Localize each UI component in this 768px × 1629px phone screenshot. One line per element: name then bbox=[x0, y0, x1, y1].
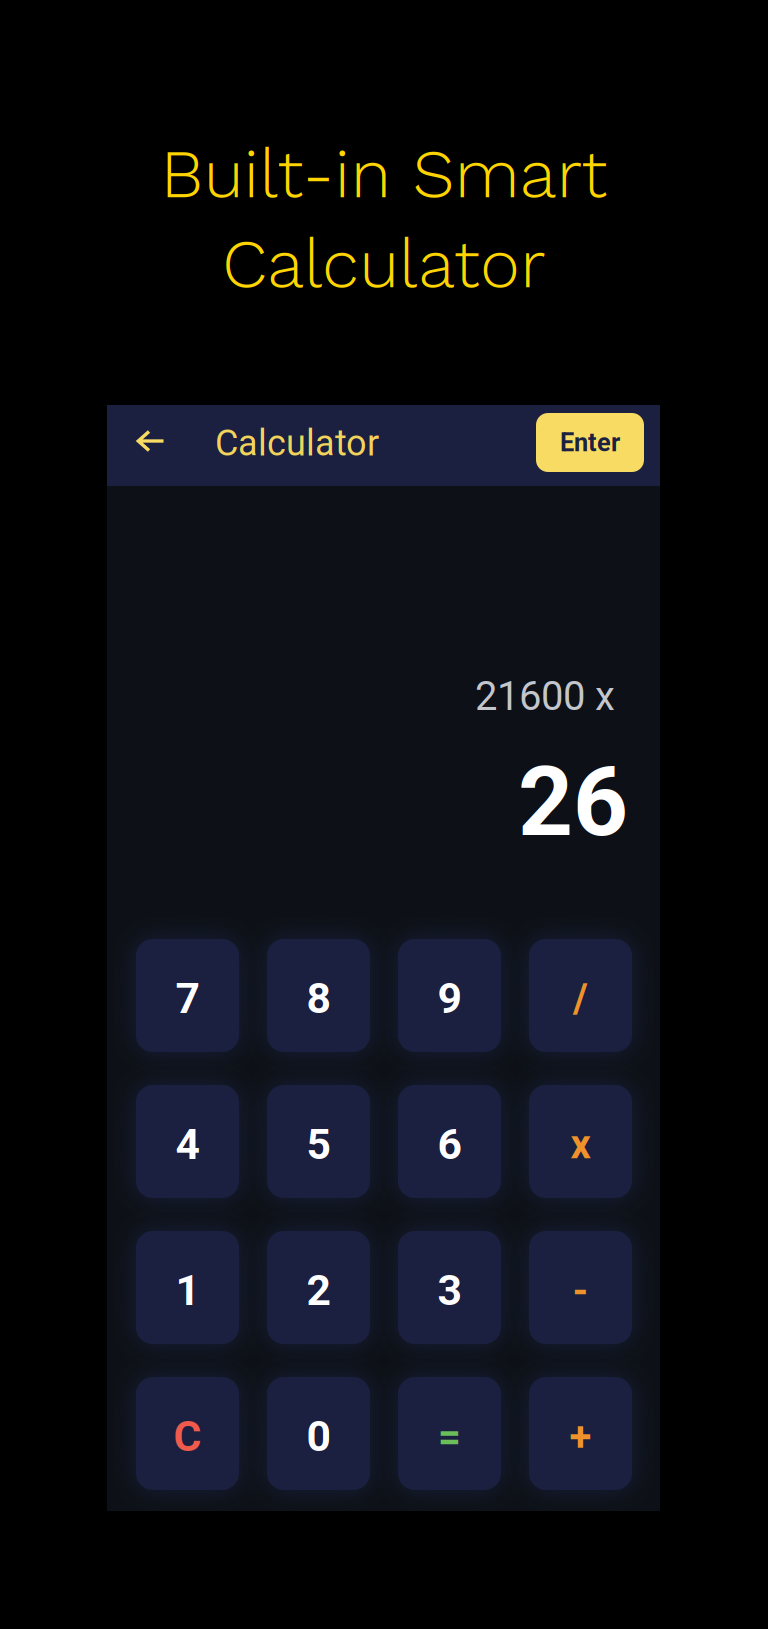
staticText: + bbox=[569, 1413, 591, 1460]
staticText: 2 bbox=[306, 1265, 330, 1315]
button[interactable]: Back bbox=[125, 415, 177, 467]
button[interactable]: 6 bbox=[398, 1085, 501, 1198]
staticText: = bbox=[438, 1413, 461, 1460]
button[interactable]: 4 bbox=[136, 1085, 239, 1198]
button[interactable]: 1 bbox=[136, 1231, 239, 1344]
button[interactable]: 7 bbox=[136, 939, 239, 1052]
staticText: C bbox=[173, 1411, 201, 1461]
button[interactable]: x bbox=[529, 1085, 632, 1198]
staticText: 8 bbox=[306, 973, 330, 1023]
staticText: 4 bbox=[175, 1119, 199, 1169]
staticText: 1 bbox=[175, 1265, 199, 1315]
staticText: - bbox=[572, 1267, 588, 1314]
button[interactable]: + bbox=[529, 1377, 632, 1490]
staticText: 5 bbox=[306, 1119, 330, 1169]
button[interactable]: / bbox=[529, 939, 632, 1052]
staticText: Enter bbox=[560, 428, 620, 457]
staticText: / bbox=[573, 975, 588, 1022]
button[interactable]: = bbox=[398, 1377, 501, 1490]
button[interactable]: 9 bbox=[398, 939, 501, 1052]
button[interactable]: 3 bbox=[398, 1231, 501, 1344]
button[interactable]: - bbox=[529, 1231, 632, 1344]
button[interactable]: C bbox=[136, 1377, 239, 1490]
staticText: 3 bbox=[437, 1265, 461, 1315]
staticText: 0 bbox=[306, 1411, 330, 1461]
staticText: 6 bbox=[437, 1119, 461, 1169]
staticText: Calculator bbox=[215, 422, 379, 464]
button[interactable]: 5 bbox=[267, 1085, 370, 1198]
staticText: 7 bbox=[175, 973, 199, 1023]
staticText: x bbox=[570, 1121, 590, 1168]
button[interactable]: Enter bbox=[536, 413, 644, 472]
staticText: 21600 x bbox=[475, 673, 615, 720]
button[interactable]: 0 bbox=[267, 1377, 370, 1490]
staticText: 9 bbox=[437, 973, 461, 1023]
staticText: 26 bbox=[518, 746, 628, 858]
button[interactable]: 8 bbox=[267, 939, 370, 1052]
staticText: Calculator bbox=[222, 224, 546, 304]
button[interactable]: 2 bbox=[267, 1231, 370, 1344]
staticText: Built-in Smart bbox=[160, 134, 607, 214]
